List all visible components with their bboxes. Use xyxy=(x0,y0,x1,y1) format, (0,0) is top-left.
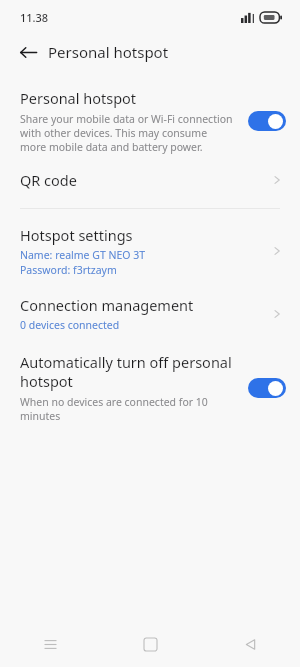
button[interactable]: Automatically turn off personal hotspot xyxy=(0,344,300,429)
staticText: Share your mobile data or Wi-Fi connecti… xyxy=(20,112,236,154)
button[interactable]: Personal hotspot xyxy=(0,80,300,160)
staticText: Automatically turn off personal hotspot xyxy=(20,352,234,391)
staticText: 0 devices connected xyxy=(20,318,120,332)
button[interactable]: Home xyxy=(100,621,200,667)
button[interactable]: Toggle xyxy=(248,111,286,131)
button[interactable]: Connection management xyxy=(0,287,300,336)
staticText: QR code xyxy=(20,170,270,190)
staticText: Name: realme GT NEO 3T xyxy=(20,248,146,262)
button[interactable]: Hotspot settings xyxy=(0,221,300,281)
button[interactable]: Back xyxy=(200,621,300,667)
staticText: Password: f3rtzaym xyxy=(20,263,117,277)
button[interactable]: Recent apps xyxy=(0,621,100,667)
staticText: When no devices are connected for 10 min… xyxy=(20,395,234,423)
staticText: Connection management xyxy=(20,295,194,315)
button[interactable]: QR code xyxy=(0,160,300,200)
staticText: 11.38 xyxy=(20,10,49,25)
button[interactable]: Toggle xyxy=(248,378,286,398)
button[interactable]: Back xyxy=(12,36,44,68)
staticText: Personal hotspot xyxy=(20,88,137,108)
staticText: Hotspot settings xyxy=(20,225,133,245)
staticText: Personal hotspot xyxy=(48,42,169,62)
